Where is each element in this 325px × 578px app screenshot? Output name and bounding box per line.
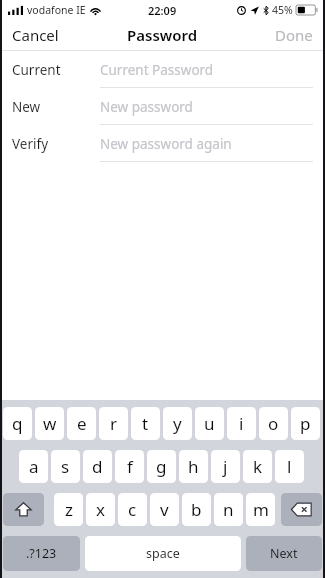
staticText: b	[191, 498, 202, 521]
staticText: t	[142, 412, 149, 435]
button[interactable]: y	[163, 407, 192, 440]
button[interactable]: x	[86, 493, 115, 526]
staticText: x	[96, 498, 105, 521]
button[interactable]: Verify	[0, 125, 325, 162]
staticText: g	[156, 455, 167, 478]
staticText: New	[12, 98, 41, 116]
button[interactable]: Cancel	[0, 21, 71, 49]
button[interactable]: i	[227, 407, 256, 440]
staticText: y	[173, 412, 182, 435]
button[interactable]: p	[291, 407, 320, 440]
button[interactable]: l	[275, 450, 304, 483]
staticText: c	[128, 498, 137, 521]
staticText: a	[29, 455, 39, 478]
staticText: o	[268, 412, 279, 435]
staticText: n	[223, 498, 234, 521]
button[interactable]: Current	[0, 51, 325, 88]
button[interactable]: w	[35, 407, 64, 440]
staticText: v	[160, 498, 169, 521]
button[interactable]: q	[3, 407, 32, 440]
staticText: u	[204, 412, 215, 435]
staticText: j	[223, 455, 228, 478]
button[interactable]: .?123	[3, 536, 80, 571]
staticText: d	[92, 455, 103, 478]
button[interactable]: u	[195, 407, 224, 440]
button[interactable]: v	[150, 493, 179, 526]
staticText: Done	[275, 25, 313, 45]
staticText: w	[43, 412, 57, 435]
staticText: Verify	[12, 135, 49, 153]
button[interactable]: s	[51, 450, 80, 483]
staticText: vodafone IE	[27, 3, 86, 17]
staticText: i	[239, 412, 244, 435]
staticText: s	[61, 455, 70, 478]
staticText: Current Password	[100, 61, 214, 79]
staticText: f	[127, 455, 133, 478]
button[interactable]: d	[83, 450, 112, 483]
button[interactable]: f	[115, 450, 144, 483]
staticText: 22:09	[148, 3, 177, 18]
button[interactable]: o	[259, 407, 288, 440]
staticText: Next	[270, 545, 298, 562]
staticText: Current	[12, 61, 61, 79]
button[interactable]: z	[54, 493, 83, 526]
button[interactable]: Backspace	[281, 493, 322, 526]
staticText: z	[65, 498, 73, 521]
staticText: q	[12, 412, 23, 435]
button[interactable]: r	[99, 407, 128, 440]
staticText: Password	[127, 25, 198, 45]
staticText: New password again	[100, 135, 232, 153]
staticText: h	[188, 455, 199, 478]
staticText: k	[253, 455, 263, 478]
staticText: p	[300, 412, 311, 435]
button[interactable]: j	[211, 450, 240, 483]
button[interactable]: space	[85, 536, 241, 571]
staticText: .?123	[26, 545, 57, 562]
button[interactable]: e	[67, 407, 96, 440]
button[interactable]: h	[179, 450, 208, 483]
button[interactable]: c	[118, 493, 147, 526]
staticText: e	[77, 412, 87, 435]
button[interactable]: g	[147, 450, 176, 483]
button[interactable]: n	[214, 493, 243, 526]
button[interactable]: Next	[246, 536, 322, 571]
button[interactable]: Shift	[3, 493, 44, 526]
staticText: Cancel	[12, 25, 59, 45]
staticText: l	[287, 455, 292, 478]
button[interactable]: b	[182, 493, 211, 526]
staticText: New password	[100, 98, 193, 116]
button[interactable]: Done	[263, 21, 325, 49]
button[interactable]: New	[0, 88, 325, 125]
button[interactable]: a	[19, 450, 48, 483]
button[interactable]: m	[246, 493, 275, 526]
staticText: m	[253, 498, 269, 521]
button[interactable]: k	[243, 450, 272, 483]
button[interactable]: t	[131, 407, 160, 440]
staticText: r	[110, 412, 118, 435]
staticText: space	[146, 545, 180, 562]
staticText: 45%	[272, 3, 293, 17]
